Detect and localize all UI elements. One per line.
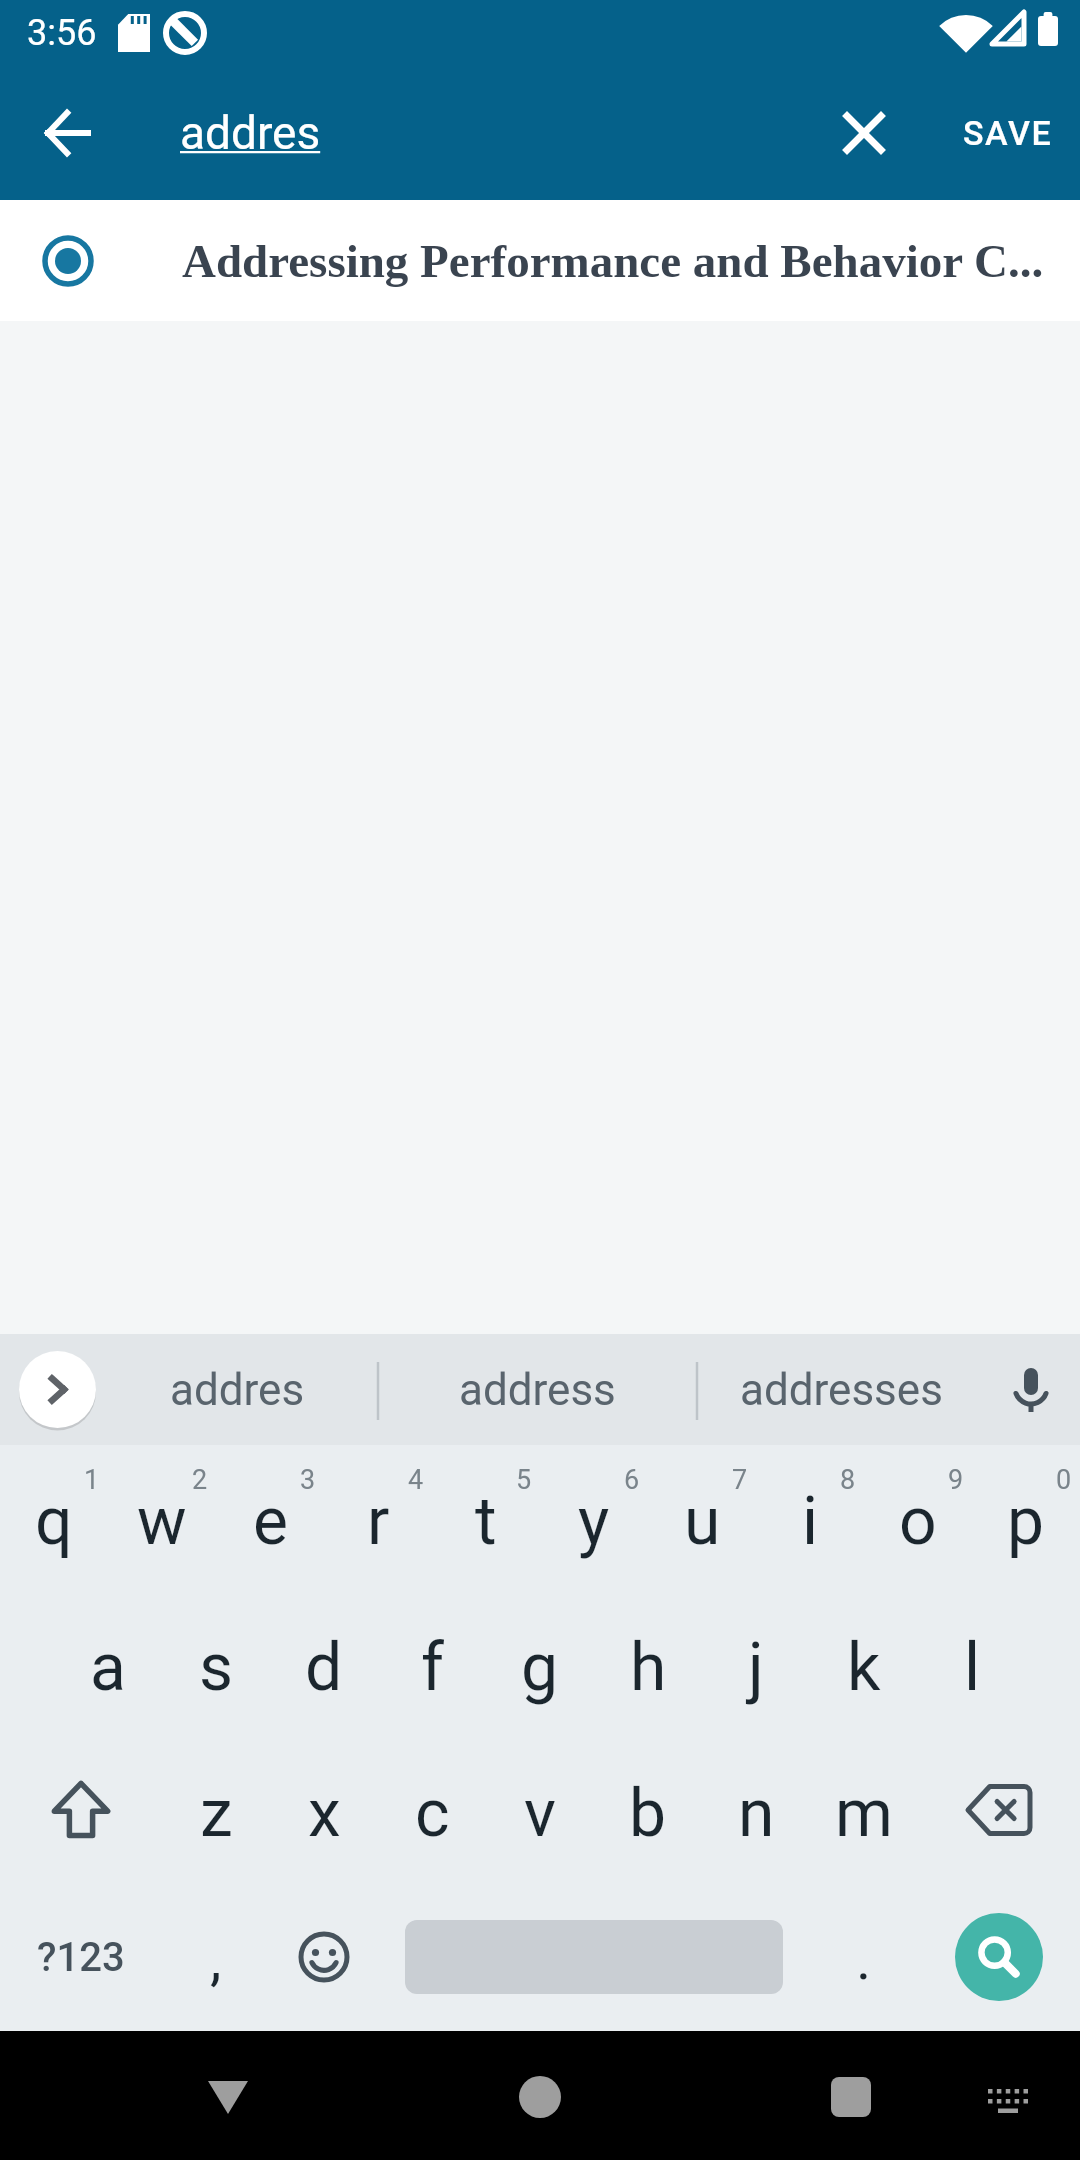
- button[interactable]: [918, 1883, 1080, 2031]
- staticText: e: [253, 1483, 288, 1560]
- staticText: j: [748, 1629, 764, 1706]
- staticText: t: [475, 1483, 497, 1560]
- button[interactable]: t: [432, 1445, 540, 1591]
- staticText: Addressing Performance and Behavior C...: [182, 235, 1044, 287]
- staticText: addres: [180, 106, 321, 160]
- staticText: y: [578, 1483, 610, 1560]
- button[interactable]: k: [810, 1591, 918, 1737]
- staticText: .: [856, 1925, 872, 1993]
- button[interactable]: [918, 1737, 1080, 1883]
- button[interactable]: [504, 2061, 576, 2133]
- staticText: ?123: [37, 1934, 125, 1981]
- staticText: 9: [948, 1464, 964, 1496]
- staticText: c: [415, 1775, 450, 1852]
- button[interactable]: addres: [96, 1334, 378, 1445]
- staticText: n: [738, 1775, 775, 1852]
- button[interactable]: [19, 1351, 96, 1428]
- staticText: z: [200, 1775, 233, 1852]
- button[interactable]: [34, 99, 102, 167]
- staticText: q: [35, 1483, 73, 1560]
- staticText: 5: [516, 1464, 532, 1496]
- button[interactable]: e: [216, 1445, 324, 1591]
- staticText: o: [899, 1483, 937, 1560]
- button[interactable]: c: [378, 1737, 486, 1883]
- button[interactable]: addresses: [701, 1334, 981, 1445]
- button[interactable]: m: [810, 1737, 918, 1883]
- button[interactable]: n: [702, 1737, 810, 1883]
- button[interactable]: [830, 99, 898, 167]
- button[interactable]: z: [162, 1737, 270, 1883]
- button[interactable]: y: [540, 1445, 648, 1591]
- button[interactable]: h: [594, 1591, 702, 1737]
- button[interactable]: [0, 1737, 162, 1883]
- button[interactable]: address: [382, 1334, 693, 1445]
- button[interactable]: r: [324, 1445, 432, 1591]
- button[interactable]: .: [810, 1883, 918, 2031]
- button[interactable]: ?123: [0, 1883, 162, 2031]
- staticText: addres: [170, 1364, 305, 1416]
- staticText: 3: [300, 1464, 316, 1496]
- button[interactable]: a: [54, 1591, 162, 1737]
- staticText: s: [199, 1629, 234, 1706]
- staticText: 1: [84, 1464, 100, 1496]
- button[interactable]: l: [918, 1591, 1026, 1737]
- staticText: 7: [732, 1464, 748, 1496]
- button[interactable]: addres: [180, 66, 321, 200]
- button[interactable]: u: [648, 1445, 756, 1591]
- button[interactable]: o: [864, 1445, 972, 1591]
- button[interactable]: [378, 1883, 810, 2031]
- staticText: g: [521, 1629, 559, 1706]
- button[interactable]: [192, 2061, 264, 2133]
- button[interactable]: i: [756, 1445, 864, 1591]
- staticText: 0: [1056, 1464, 1072, 1496]
- staticText: u: [684, 1483, 721, 1560]
- button[interactable]: ,: [162, 1883, 270, 2031]
- button[interactable]: g: [486, 1591, 594, 1737]
- button[interactable]: j: [702, 1591, 810, 1737]
- button[interactable]: [995, 1354, 1067, 1426]
- button[interactable]: q: [0, 1445, 108, 1591]
- staticText: p: [1007, 1483, 1045, 1560]
- staticText: f: [421, 1629, 444, 1706]
- staticText: a: [90, 1629, 126, 1706]
- button[interactable]: [972, 2065, 1044, 2137]
- staticText: 2: [192, 1464, 208, 1496]
- staticText: r: [367, 1483, 390, 1560]
- staticText: x: [308, 1775, 341, 1852]
- staticText: b: [629, 1775, 667, 1852]
- staticText: k: [847, 1629, 881, 1706]
- staticText: l: [964, 1629, 981, 1706]
- staticText: address: [459, 1364, 616, 1416]
- button[interactable]: [815, 2061, 887, 2133]
- staticText: m: [835, 1775, 893, 1852]
- staticText: h: [630, 1629, 667, 1706]
- staticText: 4: [408, 1464, 424, 1496]
- staticText: 6: [624, 1464, 640, 1496]
- staticText: SAVE: [963, 113, 1053, 153]
- staticText: i: [802, 1483, 819, 1560]
- button[interactable]: SAVE: [945, 99, 1070, 167]
- staticText: ,: [210, 1925, 222, 1993]
- button[interactable]: s: [162, 1591, 270, 1737]
- staticText: 8: [840, 1464, 856, 1496]
- button[interactable]: [270, 1883, 378, 2031]
- button[interactable]: x: [270, 1737, 378, 1883]
- button[interactable]: Addressing Performance and Behavior C...: [0, 200, 1080, 321]
- staticText: 3:56: [27, 12, 97, 54]
- button[interactable]: p: [972, 1445, 1080, 1591]
- staticText: d: [305, 1629, 343, 1706]
- button[interactable]: d: [270, 1591, 378, 1737]
- button[interactable]: f: [378, 1591, 486, 1737]
- button[interactable]: b: [594, 1737, 702, 1883]
- button[interactable]: v: [486, 1737, 594, 1883]
- staticText: v: [524, 1775, 556, 1852]
- staticText: w: [137, 1483, 187, 1560]
- staticText: addresses: [740, 1364, 943, 1416]
- button[interactable]: w: [108, 1445, 216, 1591]
